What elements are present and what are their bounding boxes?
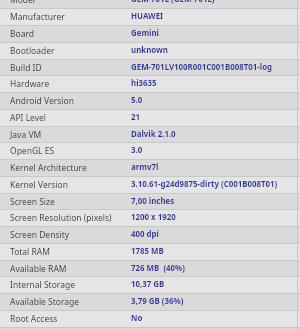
staticText: Model <box>10 0 36 6</box>
staticText: armv7l <box>131 162 159 173</box>
staticText: Screen Density <box>10 229 70 241</box>
staticText: 3.0 <box>131 145 143 156</box>
staticText: 7,00 inches <box>131 196 175 207</box>
button[interactable]: Kernel Architecture <box>0 159 300 176</box>
staticText: 5.0 <box>131 95 143 106</box>
button[interactable]: Available RAM <box>0 260 300 277</box>
button[interactable]: Available Storage <box>0 293 300 310</box>
staticText: Root Access <box>10 313 58 325</box>
staticText: 726 MB (40%) <box>131 263 185 274</box>
button[interactable]: Internal Storage <box>0 276 300 293</box>
button[interactable]: Build ID <box>0 59 300 76</box>
button[interactable]: OpenGL ES <box>0 142 300 159</box>
button[interactable]: Busybox <box>0 327 300 329</box>
button[interactable]: Total RAM <box>0 243 300 260</box>
staticText: hi3635 <box>131 78 157 89</box>
button[interactable]: Hardware <box>0 75 300 92</box>
staticText: HUAWEI <box>131 11 164 22</box>
staticText: 3,79 GB (36%) <box>131 296 184 307</box>
staticText: Board <box>10 28 35 40</box>
staticText: Hardware <box>10 78 50 90</box>
staticText: Kernel Version <box>10 179 68 191</box>
button[interactable]: Manufacturer <box>0 8 300 25</box>
staticText: Internal Storage <box>10 279 75 291</box>
button[interactable]: Board <box>0 25 300 42</box>
staticText: Dalvik 2.1.0 <box>131 129 176 140</box>
staticText: 1785 MB <box>131 246 164 257</box>
staticText: No <box>131 313 143 324</box>
staticText: Bootloader <box>10 45 55 57</box>
staticText: Java VM <box>10 129 42 141</box>
button[interactable]: Bootloader <box>0 42 300 59</box>
staticText: unknown <box>131 45 168 56</box>
staticText: OpenGL ES <box>10 145 55 157</box>
staticText: GEM-701LV100R001C001B008T01-log <box>131 62 273 73</box>
staticText: Build ID <box>10 62 42 74</box>
staticText: Total RAM <box>10 246 50 258</box>
staticText: 400 dpi <box>131 229 159 240</box>
button[interactable]: Java VM <box>0 126 300 143</box>
staticText: Available RAM <box>10 263 67 275</box>
button[interactable]: Screen Resolution (pixels) <box>0 209 300 226</box>
staticText: 1200 x 1920 <box>131 212 176 223</box>
button[interactable]: Root Access <box>0 310 300 327</box>
staticText: Kernel Architecture <box>10 162 87 174</box>
button[interactable]: Android Version <box>0 92 300 109</box>
button[interactable]: Screen Size <box>0 193 300 210</box>
staticText: Screen Size <box>10 196 55 208</box>
button[interactable]: Model <box>0 0 300 8</box>
staticText: 3.10.61-g24d9875-dirty (C001B008T01) <box>131 179 278 190</box>
staticText: Android Version <box>10 95 74 107</box>
staticText: Manufacturer <box>10 11 65 23</box>
button[interactable]: API Level <box>0 109 300 126</box>
staticText: 21 <box>131 112 141 123</box>
staticText: GEM-701L (GEM-701L) <box>131 0 215 5</box>
staticText: Screen Resolution (pixels) <box>10 212 112 224</box>
button[interactable]: Kernel Version <box>0 176 300 193</box>
staticText: 10,37 GB <box>131 279 165 290</box>
staticText: API Level <box>10 112 47 124</box>
staticText: Available Storage <box>10 296 80 308</box>
staticText: Gemini <box>131 28 159 39</box>
button[interactable]: Screen Density <box>0 226 300 243</box>
